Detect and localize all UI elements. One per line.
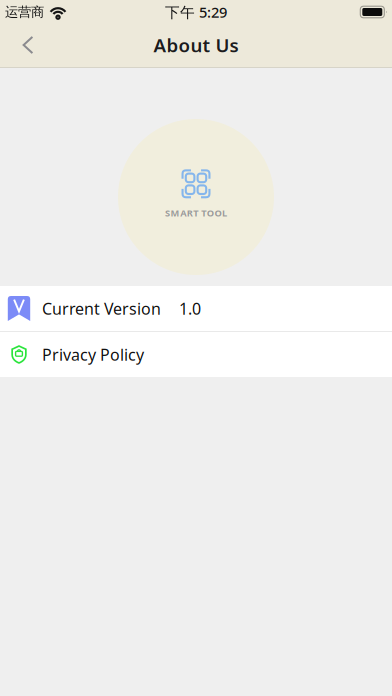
button[interactable]: Current Version (0, 286, 392, 331)
staticText: 运营商 (5, 4, 44, 20)
staticText: Current Version (42, 298, 161, 319)
button[interactable]: Back (6, 23, 50, 67)
button[interactable]: Privacy Policy (0, 332, 392, 377)
staticText: Privacy Policy (42, 344, 144, 365)
staticText: 1.0 (179, 298, 201, 319)
staticText: SMART TOOL (165, 207, 227, 219)
staticText: About Us (153, 33, 238, 57)
staticText: 下午 5:29 (165, 2, 227, 22)
